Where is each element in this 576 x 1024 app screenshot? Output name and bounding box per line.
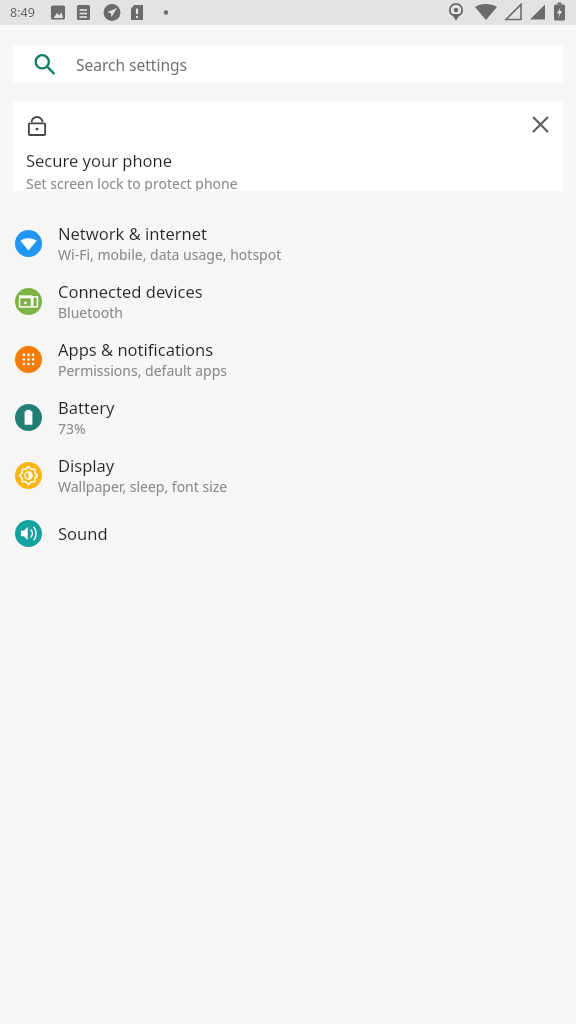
staticText: Permissions, default apps — [58, 361, 228, 380]
staticText: Apps & notifications — [58, 338, 214, 360]
button[interactable]: Connected devices — [0, 272, 576, 330]
button[interactable]: Search settings — [13, 45, 563, 83]
staticText: Sound — [58, 522, 108, 544]
staticText: 73% — [58, 419, 86, 438]
staticText: Set screen lock to protect phone — [26, 174, 238, 191]
staticText: Search settings — [76, 54, 187, 75]
staticText: Secure your phone — [26, 149, 173, 171]
staticText: Display — [58, 454, 115, 476]
button[interactable]: Network & internet — [0, 214, 576, 272]
staticText: Bluetooth — [58, 303, 123, 322]
button[interactable]: Apps & notifications — [0, 330, 576, 388]
staticText: Wi-Fi, mobile, data usage, hotspot — [58, 245, 282, 264]
staticText: 8:49 — [10, 4, 35, 21]
button[interactable]: Dismiss — [13, 101, 563, 191]
button[interactable]: Battery — [0, 388, 576, 446]
button[interactable]: Sound — [0, 504, 576, 562]
staticText: Network & internet — [58, 222, 208, 244]
button[interactable]: Display — [0, 446, 576, 504]
staticText: Connected devices — [58, 280, 203, 302]
staticText: Wallpaper, sleep, font size — [58, 477, 228, 496]
button[interactable]: Dismiss — [523, 107, 557, 141]
staticText: Battery — [58, 396, 115, 418]
